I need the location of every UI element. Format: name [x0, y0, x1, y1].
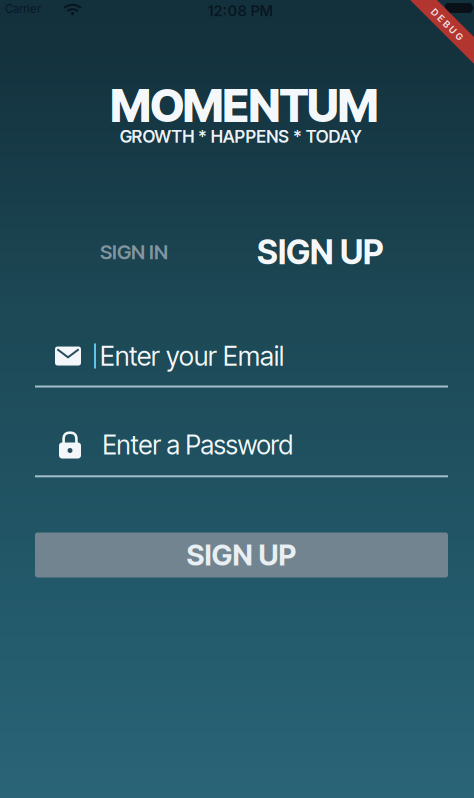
button[interactable]: Enter a Password: [0, 425, 474, 465]
staticText: Enter your Email: [100, 340, 284, 372]
staticText: Carrier: [5, 2, 41, 16]
button[interactable]: SIGN UP: [251, 226, 389, 278]
staticText: SIGN IN: [100, 240, 168, 264]
button[interactable]: Enter your Email: [0, 336, 474, 376]
staticText: SIGN UP: [257, 232, 383, 272]
staticText: MOMENTUM: [110, 78, 379, 133]
staticText: Enter a Password: [102, 429, 293, 461]
button[interactable]: SIGN UP: [35, 532, 448, 577]
staticText: GROWTH * HAPPENS * TODAY: [120, 126, 362, 147]
staticText: 12:08 PM: [207, 2, 273, 20]
staticText: D E B U G: [426, 19, 467, 30]
button[interactable]: SIGN IN: [94, 234, 174, 270]
staticText: SIGN UP: [186, 538, 296, 572]
